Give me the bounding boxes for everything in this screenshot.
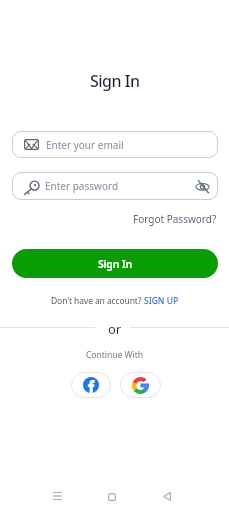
staticText: Enter your email <box>46 138 124 152</box>
staticText: Continue With <box>86 349 143 361</box>
button[interactable] <box>158 488 175 505</box>
button[interactable]: Forgot Password? <box>0 212 217 226</box>
staticText: Sign In <box>90 70 140 92</box>
button[interactable]: Enter your email <box>12 131 218 158</box>
button[interactable] <box>49 488 66 505</box>
staticText: or <box>108 320 122 337</box>
button[interactable] <box>71 372 111 398</box>
staticText: Don't have an account? <box>51 295 144 307</box>
button[interactable] <box>120 372 161 398</box>
staticText: Enter password <box>45 179 119 193</box>
button[interactable]: Enter password <box>12 172 218 200</box>
button[interactable]: Sign In <box>12 249 218 278</box>
staticText: SIGN UP <box>144 295 179 307</box>
staticText: Sign In <box>98 257 132 271</box>
staticText: Forgot Password? <box>133 212 217 226</box>
button[interactable] <box>103 488 120 505</box>
button[interactable]: Don't have an account? <box>0 295 229 307</box>
